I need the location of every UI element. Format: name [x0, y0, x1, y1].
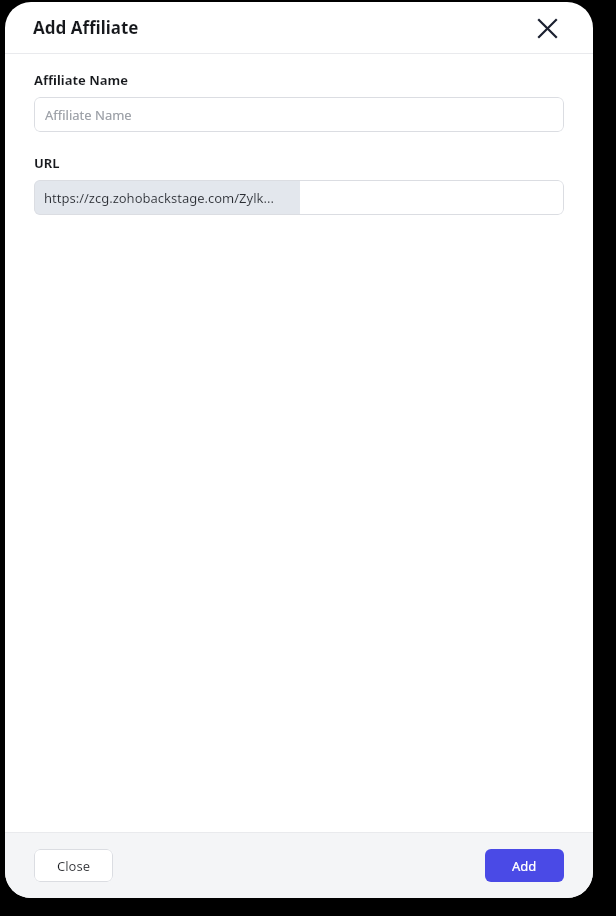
button[interactable]: https://zcg.zohobackstage.com/Zylk...: [34, 180, 564, 215]
staticText: Affiliate Name: [34, 71, 129, 89]
button[interactable]: Close dialog: [531, 12, 563, 44]
staticText: Close: [57, 857, 90, 875]
staticText: Add Affiliate: [33, 16, 139, 39]
staticText: URL: [34, 154, 60, 172]
staticText: Affiliate Name: [45, 106, 132, 124]
button[interactable]: Affiliate Name: [34, 97, 564, 132]
button[interactable]: Close: [34, 849, 113, 882]
staticText: https://zcg.zohobackstage.com/Zylk...: [44, 189, 274, 207]
button[interactable]: Add: [485, 849, 564, 882]
staticText: Add: [512, 857, 537, 875]
